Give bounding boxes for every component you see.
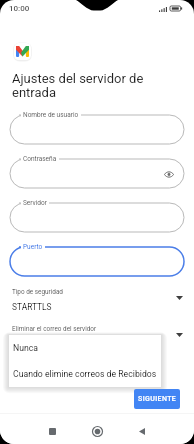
staticText: Servidor <box>23 199 47 207</box>
button[interactable]: Inicio <box>83 417 111 444</box>
staticText: SIGUIENTE <box>138 395 177 403</box>
staticText: Tipo de seguridad <box>12 288 63 296</box>
staticText: Cuando elimine correos de Recibidos <box>13 369 157 379</box>
staticText: STARTTLS <box>12 302 52 312</box>
staticText: 10:00 <box>9 4 30 13</box>
button[interactable]: Contraseña <box>10 159 184 188</box>
button[interactable]: Nunca <box>9 335 161 361</box>
staticText: Puerto <box>23 243 43 251</box>
button[interactable]: SIGUIENTE <box>134 389 180 409</box>
staticText: Ajustes del servidor de entrada <box>12 71 182 101</box>
staticText: Nunca <box>13 343 39 353</box>
button[interactable]: Mostrar contraseña <box>162 167 176 181</box>
staticText: Contraseña <box>23 155 57 163</box>
staticText: Nunca <box>12 339 37 349</box>
button[interactable]: Eliminar el correo del servidor <box>0 321 194 349</box>
button[interactable]: Nombre de usuario <box>10 115 184 144</box>
button[interactable]: Recientes <box>38 417 66 444</box>
button[interactable]: Cuando elimine correos de Recibidos <box>9 361 161 387</box>
button[interactable]: Tipo de seguridad <box>0 284 194 312</box>
button[interactable]: Servidor <box>10 203 184 232</box>
button[interactable]: Puerto <box>10 247 184 276</box>
button[interactable]: Atrás <box>128 417 156 444</box>
staticText: Eliminar el correo del servidor <box>12 325 97 333</box>
staticText: Nombre de usuario <box>23 111 79 119</box>
